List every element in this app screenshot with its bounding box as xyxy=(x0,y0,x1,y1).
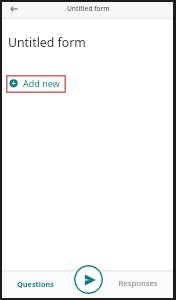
staticText: Untitled form xyxy=(8,34,86,51)
staticText: Responses xyxy=(118,278,158,289)
staticText: Untitled form xyxy=(67,4,110,13)
button[interactable]: Responses xyxy=(101,271,173,298)
button[interactable]: Send xyxy=(74,265,103,294)
button[interactable]: Questions xyxy=(2,271,74,298)
button[interactable]: Add new xyxy=(6,75,66,93)
staticText: Add new xyxy=(23,77,60,89)
staticText: Questions xyxy=(17,279,54,289)
button[interactable]: Back xyxy=(5,3,19,17)
